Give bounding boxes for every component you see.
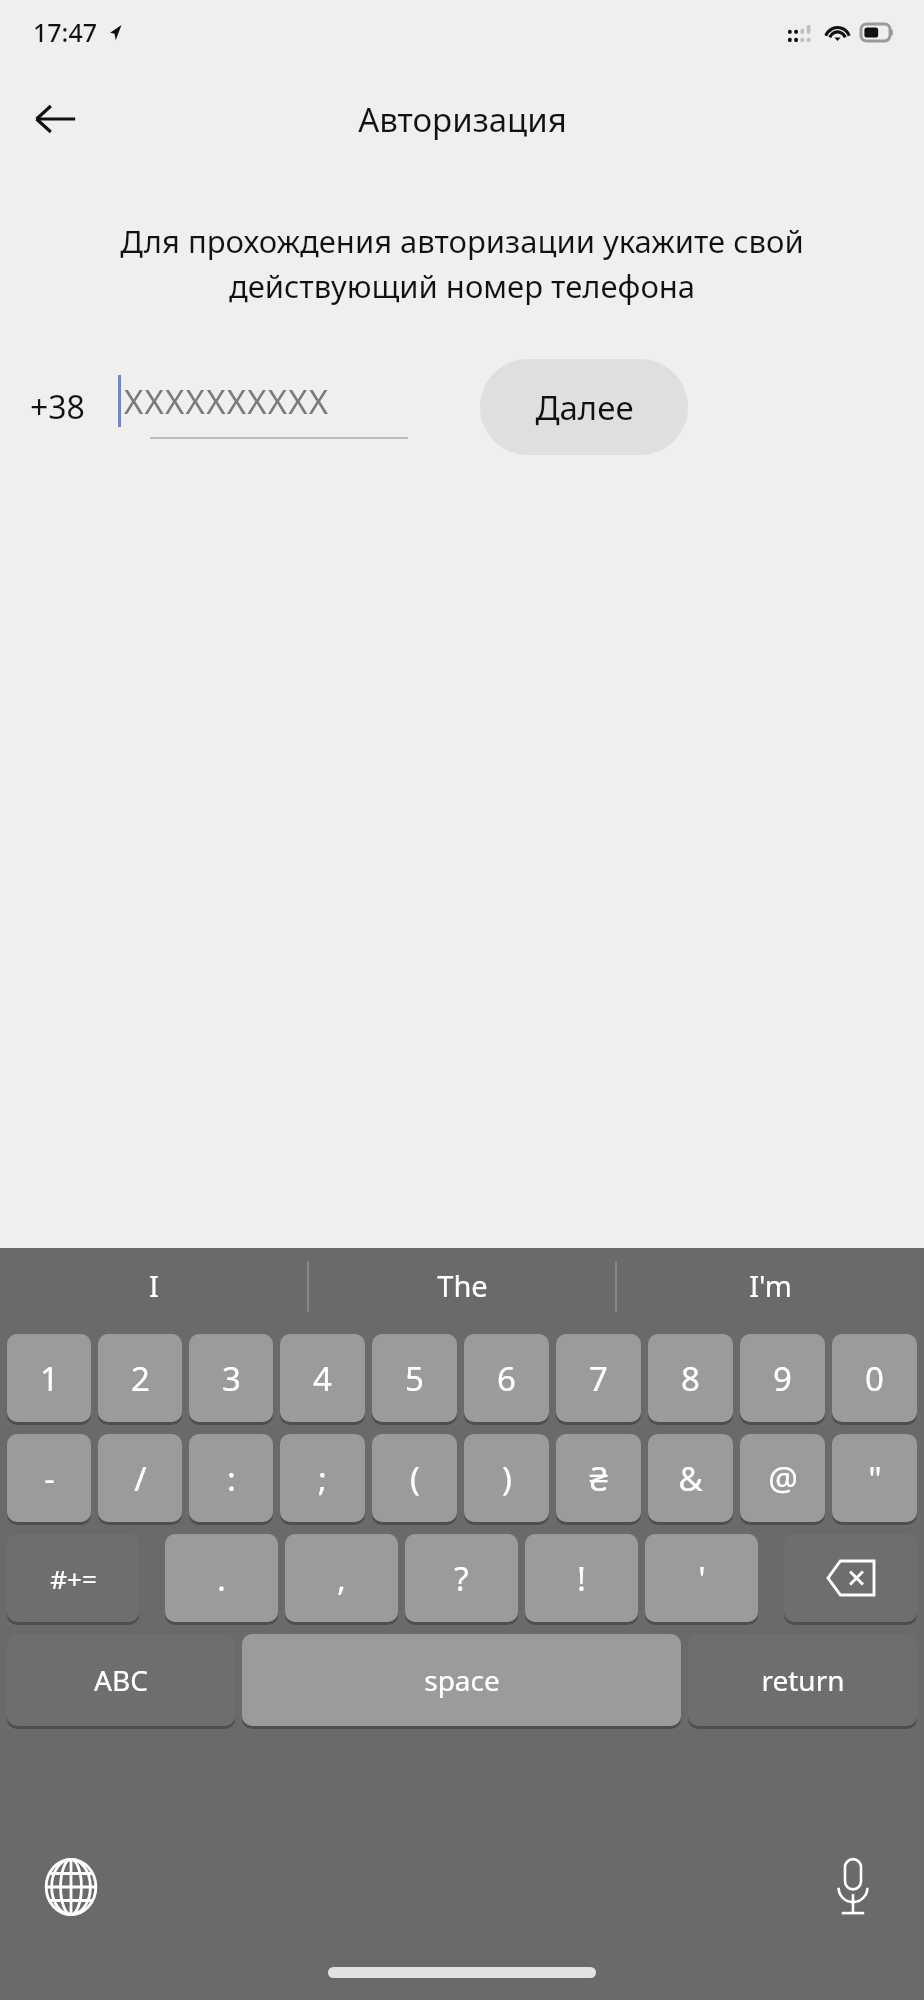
button[interactable]: Backspace <box>784 1534 917 1622</box>
button[interactable]: . <box>165 1534 278 1622</box>
staticText: ABC <box>94 1661 148 1699</box>
staticText: : <box>227 1456 236 1501</box>
staticText: Для прохождения авторизации укажите свой… <box>28 220 896 307</box>
staticText: ? <box>454 1556 469 1601</box>
staticText: , <box>337 1556 346 1601</box>
button[interactable]: 1 <box>7 1334 91 1422</box>
button[interactable]: 4 <box>280 1334 365 1422</box>
staticText: 6 <box>497 1356 516 1401</box>
staticText: return <box>761 1661 845 1699</box>
staticText: 7 <box>589 1356 608 1401</box>
staticText: The <box>437 1266 488 1305</box>
button[interactable]: ! <box>525 1534 638 1622</box>
button[interactable]: : <box>189 1434 273 1522</box>
staticText: . <box>217 1556 226 1601</box>
staticText: ₴ <box>589 1456 608 1501</box>
staticText: 4 <box>313 1356 332 1401</box>
button[interactable]: ₴ <box>556 1434 641 1522</box>
button[interactable]: @ <box>740 1434 825 1522</box>
staticText: ' <box>698 1556 706 1601</box>
button[interactable]: 6 <box>464 1334 549 1422</box>
staticText: I'm <box>749 1266 792 1305</box>
staticText: space <box>424 1661 500 1699</box>
staticText: ! <box>577 1556 586 1601</box>
button[interactable]: ABC <box>7 1634 235 1726</box>
button[interactable]: ' <box>645 1534 758 1622</box>
staticText: / <box>134 1456 147 1501</box>
button[interactable]: , <box>285 1534 398 1622</box>
staticText: 0 <box>865 1356 884 1401</box>
staticText: " <box>868 1456 882 1501</box>
button[interactable]: XXXXXXXXXX <box>118 349 414 465</box>
button[interactable]: 3 <box>189 1334 273 1422</box>
button[interactable]: I <box>0 1248 308 1322</box>
staticText: 3 <box>222 1356 241 1401</box>
staticText: ( <box>410 1456 420 1501</box>
button[interactable]: Назад <box>22 86 88 152</box>
staticText: 5 <box>405 1356 424 1401</box>
button[interactable]: ) <box>464 1434 549 1522</box>
staticText: I <box>149 1266 159 1305</box>
staticText: Далее <box>535 385 634 430</box>
button[interactable]: space <box>242 1634 681 1726</box>
button[interactable]: The <box>308 1248 616 1322</box>
staticText: +38 <box>30 385 85 429</box>
staticText: 8 <box>681 1356 700 1401</box>
staticText: - <box>44 1456 55 1501</box>
button[interactable]: 2 <box>98 1334 182 1422</box>
button[interactable]: 5 <box>372 1334 457 1422</box>
staticText: Авторизация <box>358 97 567 142</box>
button[interactable]: ( <box>372 1434 457 1522</box>
staticText: 17:47 <box>33 15 98 49</box>
staticText: & <box>678 1456 703 1501</box>
staticText: @ <box>768 1456 798 1501</box>
button[interactable]: & <box>648 1434 733 1522</box>
button[interactable]: Сменить язык <box>28 1844 114 1930</box>
staticText: 1 <box>40 1356 59 1401</box>
button[interactable]: Голосовой ввод <box>810 1844 896 1930</box>
staticText: 2 <box>131 1356 150 1401</box>
button[interactable]: #+= <box>7 1534 139 1622</box>
button[interactable]: " <box>832 1434 917 1522</box>
button[interactable]: ; <box>280 1434 365 1522</box>
staticText: XXXXXXXXXX <box>124 379 330 424</box>
staticText: #+= <box>50 1561 97 1596</box>
staticText: ; <box>318 1456 327 1501</box>
button[interactable]: 0 <box>832 1334 917 1422</box>
button[interactable]: 8 <box>648 1334 733 1422</box>
button[interactable]: - <box>7 1434 91 1522</box>
button[interactable]: 9 <box>740 1334 825 1422</box>
button[interactable]: I'm <box>616 1248 924 1322</box>
staticText: ) <box>502 1456 512 1501</box>
button[interactable]: 7 <box>556 1334 641 1422</box>
staticText: 9 <box>773 1356 792 1401</box>
button[interactable]: Далее <box>480 359 688 455</box>
button[interactable]: return <box>688 1634 917 1726</box>
button[interactable]: ? <box>405 1534 518 1622</box>
button[interactable]: / <box>98 1434 182 1522</box>
